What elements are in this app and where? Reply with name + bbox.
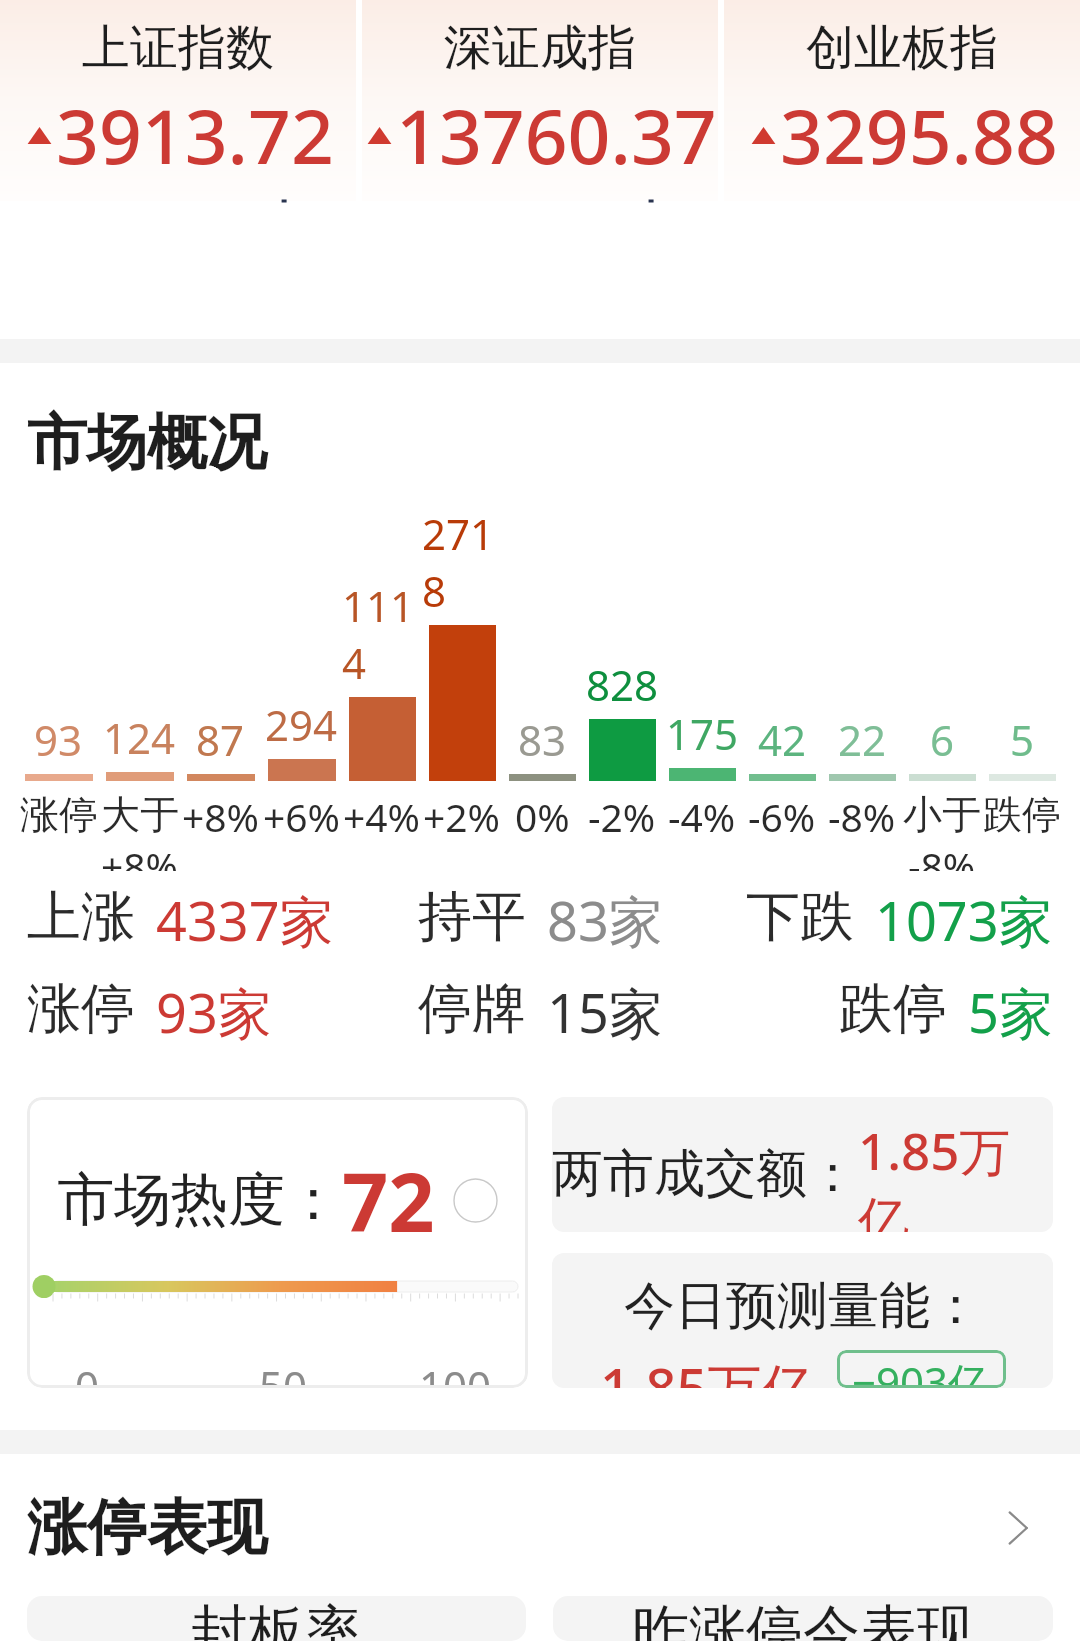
staticText: 6 [930, 711, 955, 768]
staticText: -8% [828, 790, 896, 843]
staticText: −903亿 [852, 1353, 991, 1385]
staticText: +2% [423, 790, 501, 843]
staticText: 15家 [547, 975, 663, 1049]
staticText: 2718 [422, 505, 502, 619]
staticText: 1.85万亿 [858, 1115, 1053, 1232]
staticText: 上证指数 [82, 18, 274, 78]
staticText: +0.63% [186, 189, 339, 201]
staticText: 深证成指 [444, 18, 636, 78]
staticText: 上涨 [27, 883, 135, 951]
staticText: 83家 [547, 883, 663, 957]
staticText: 跌停 [983, 790, 1061, 839]
button[interactable]: 今日预测量能： [552, 1253, 1053, 1388]
staticText: +4% [343, 790, 421, 843]
staticText: 涨停 [20, 790, 98, 839]
staticText: 175 [666, 705, 739, 762]
staticText: 持平 [418, 883, 526, 951]
staticText: 4337家 [156, 883, 334, 957]
staticText: 5 [1010, 711, 1035, 768]
staticText: 83 [518, 711, 567, 768]
staticText: 3913.72 [56, 84, 334, 186]
button[interactable]: 创业板指 [724, 0, 1080, 201]
staticText: 停牌 [418, 975, 526, 1043]
staticText: +8% [101, 839, 179, 871]
button[interactable]: 两市成交额： [552, 1097, 1053, 1232]
button[interactable]: 昨涨停今表现 [553, 1596, 1053, 1641]
button[interactable]: 市场热度： [27, 1097, 528, 1388]
staticText: 5家 [968, 975, 1053, 1049]
staticText: 昨涨停今表现 [632, 1596, 974, 1641]
staticText: 创业板指 [806, 18, 998, 78]
staticText: 1.85万亿 [600, 1350, 816, 1388]
staticText: 涨停 [27, 975, 135, 1043]
staticText: 93家 [156, 975, 272, 1049]
staticText: -8% [908, 839, 976, 871]
staticText: 22 [838, 711, 887, 768]
staticText: 封板率 [191, 1596, 362, 1641]
staticText: 124 [103, 709, 176, 766]
staticText: -6% [748, 790, 816, 843]
staticText: +1.13% [561, 189, 714, 201]
staticText: 93 [34, 711, 83, 768]
staticText: 跌停 [839, 975, 947, 1043]
staticText: 1073家 [875, 883, 1053, 957]
staticText: 1114 [342, 577, 422, 691]
staticText: 50 [259, 1357, 308, 1388]
button[interactable]: 上证指数 [0, 0, 356, 201]
other: 查看涨停表现详情 [993, 1498, 1053, 1558]
staticText: -2% [588, 790, 656, 843]
staticText: +6% [263, 790, 341, 843]
button[interactable]: 深证成指 [362, 0, 718, 201]
staticText: 42 [758, 711, 807, 768]
staticText: 下跌 [746, 883, 854, 951]
staticText: 87 [196, 711, 245, 768]
staticText: 涨停表现 [27, 1490, 267, 1566]
staticText: 大于 [101, 790, 179, 839]
staticText: 0% [515, 790, 570, 843]
staticText: 今日预测量能： [624, 1274, 981, 1338]
button[interactable]: 涨停表现 [0, 1490, 1080, 1566]
staticText: 小于 [903, 790, 981, 839]
staticText: +8% [182, 790, 260, 843]
staticText: -4% [668, 790, 736, 843]
staticText: 0 [75, 1357, 100, 1388]
button[interactable]: 封板率 [27, 1596, 526, 1641]
staticText: 3295.88 [780, 84, 1058, 186]
staticText: 828 [586, 656, 659, 713]
staticText: 市场概况 [27, 405, 267, 481]
staticText: 294 [265, 696, 338, 753]
staticText: 13760.37 [396, 84, 717, 186]
staticText: 100 [419, 1357, 492, 1388]
staticText: 72 [342, 1145, 435, 1255]
staticText: 市场热度： [57, 1164, 342, 1236]
staticText: 两市成交额： [552, 1142, 858, 1206]
